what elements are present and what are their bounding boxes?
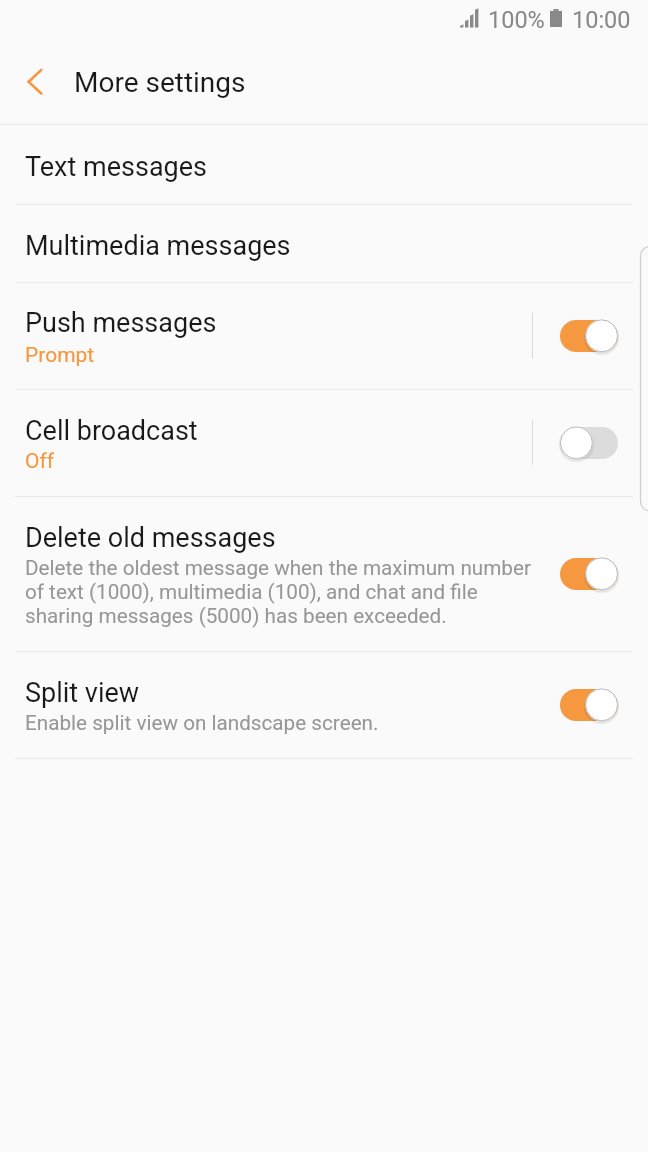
button[interactable]: Split view, on: [554, 682, 624, 728]
button[interactable]: Navigate up: [0, 44, 62, 116]
button[interactable]: Delete old messages, on: [554, 551, 624, 597]
staticText: 10:00: [572, 6, 631, 34]
staticText: 100%: [488, 6, 545, 34]
staticText: Push messages: [25, 307, 217, 339]
button[interactable]: [0, 124, 648, 204]
staticText: Delete the oldest message when the maxim…: [25, 556, 535, 628]
staticText: Cell broadcast: [25, 415, 198, 447]
staticText: Multimedia messages: [25, 230, 291, 262]
staticText: Delete old messages: [25, 522, 276, 554]
button[interactable]: [0, 389, 648, 496]
staticText: Off: [25, 449, 55, 474]
button[interactable]: [0, 282, 648, 389]
staticText: Enable split view on landscape screen.: [25, 711, 379, 735]
button[interactable]: [0, 204, 648, 282]
staticText: Text messages: [25, 151, 208, 183]
button[interactable]: [0, 651, 648, 758]
button[interactable]: [0, 496, 648, 651]
button[interactable]: Push messages, on: [554, 313, 624, 359]
button[interactable]: Cell broadcast, off: [554, 420, 624, 466]
staticText: Split view: [25, 677, 140, 709]
staticText: More settings: [74, 66, 246, 99]
staticText: Prompt: [25, 343, 95, 368]
